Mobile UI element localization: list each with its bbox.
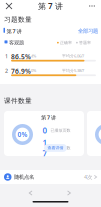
staticText: 66.0% (26, 68, 36, 73)
staticText: 平均分5.38/7 (62, 68, 84, 73)
staticText: 平均分6.06/7 (62, 53, 84, 58)
staticText: 1 (5, 53, 8, 60)
staticText: 17 (42, 137, 47, 158)
button[interactable]: 前进 (63, 188, 77, 198)
button[interactable]: 随机点名 (0, 170, 101, 184)
staticText: 课件总页数 (51, 145, 71, 150)
button[interactable]: 更多 (85, 0, 99, 12)
button[interactable]: 关闭 (2, 0, 16, 12)
staticText: 习题数量 (4, 15, 32, 24)
button[interactable]: 全部习题 (77, 27, 99, 35)
staticText: 4次 (84, 173, 92, 181)
staticText: 课件数量 (4, 97, 32, 105)
staticText: 第 7 讲 (6, 28, 21, 35)
staticText: 答题率 (79, 40, 91, 45)
staticText: 正确率 (60, 40, 72, 45)
staticText: 查看详情 (47, 145, 63, 150)
staticText: 第 7 讲 (41, 114, 56, 121)
staticText: 全部习题 (78, 28, 98, 34)
staticText: 0% (17, 130, 27, 139)
staticText: 客观题 (9, 39, 24, 46)
staticText: 已播放页数 (51, 128, 71, 133)
staticText: 随机点名 (14, 174, 34, 180)
staticText: 76.9% (11, 67, 31, 76)
button[interactable]: 查看详情 (44, 144, 67, 152)
staticText: 86.5% (11, 52, 31, 61)
staticText: 86.4% (26, 53, 36, 58)
button[interactable]: 返回 (24, 188, 38, 198)
staticText: 0 (42, 125, 47, 136)
staticText: 第 7 讲 (38, 1, 63, 11)
staticText: 2 (5, 67, 8, 74)
